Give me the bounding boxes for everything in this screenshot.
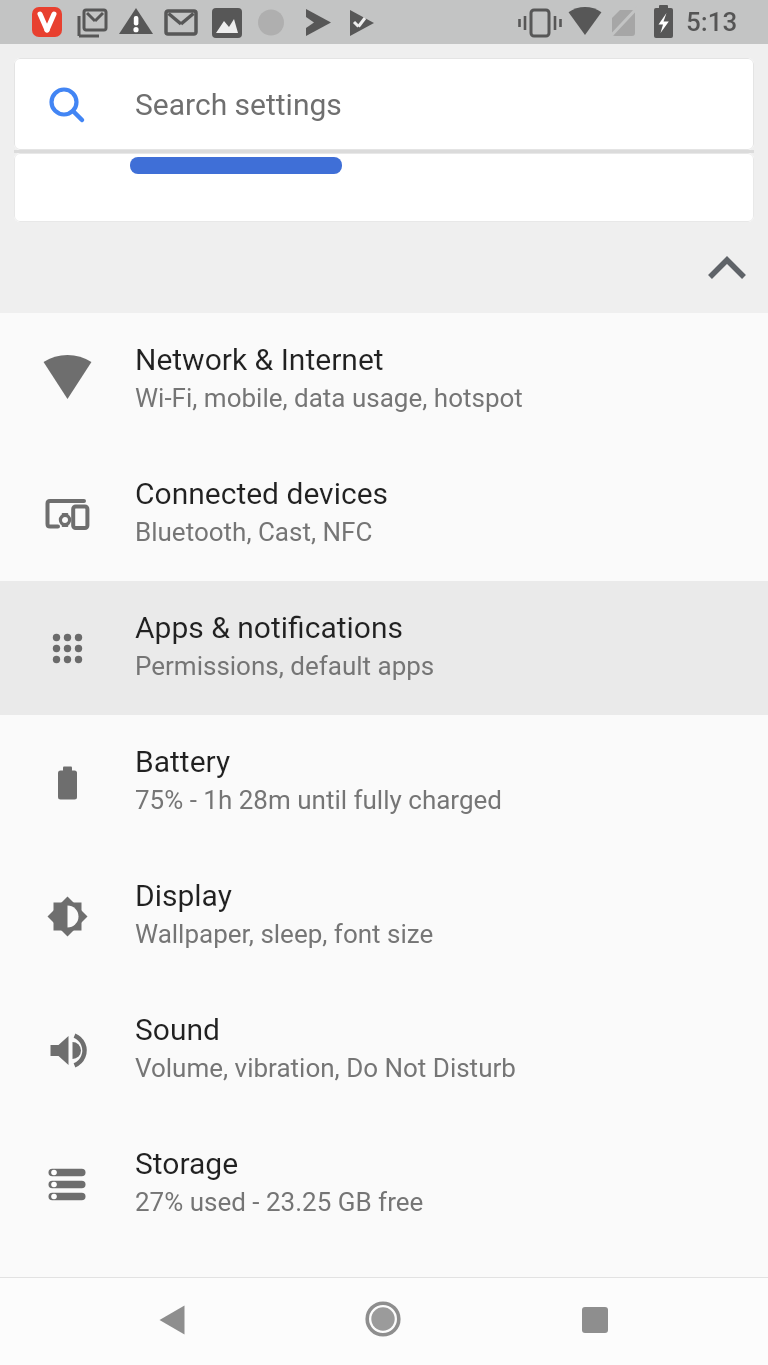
button[interactable]: Apps & notifications bbox=[0, 581, 768, 715]
button[interactable] bbox=[696, 237, 758, 299]
staticText: Display bbox=[135, 878, 232, 913]
button[interactable]: Storage bbox=[0, 1117, 768, 1251]
staticText: Sound bbox=[135, 1012, 220, 1047]
staticText: Bluetooth, Cast, NFC bbox=[135, 517, 373, 547]
button[interactable]: Battery bbox=[0, 715, 768, 849]
staticText: Connected devices bbox=[135, 476, 389, 511]
button[interactable]: Network & Internet bbox=[0, 313, 768, 447]
staticText: 5:13 bbox=[686, 7, 738, 37]
staticText: Network & Internet bbox=[135, 342, 384, 377]
staticText: Storage bbox=[135, 1146, 239, 1181]
staticText: Permissions, default apps bbox=[135, 651, 435, 681]
staticText: Wallpaper, sleep, font size bbox=[135, 919, 434, 949]
button[interactable]: Display bbox=[0, 849, 768, 983]
staticText: Search settings bbox=[135, 87, 342, 122]
button[interactable] bbox=[355, 1292, 411, 1348]
staticText: Battery bbox=[135, 744, 231, 779]
staticText: Apps & notifications bbox=[135, 610, 403, 645]
staticText: 75% - 1h 28m until fully charged bbox=[135, 785, 502, 815]
button[interactable]: Connected devices bbox=[0, 447, 768, 581]
staticText: 27% used - 23.25 GB free bbox=[135, 1187, 424, 1217]
button[interactable]: Search settings bbox=[14, 58, 754, 150]
staticText: Volume, vibration, Do Not Disturb bbox=[135, 1053, 516, 1083]
button[interactable] bbox=[14, 153, 754, 222]
staticText: Wi-Fi, mobile, data usage, hotspot bbox=[135, 383, 523, 413]
button[interactable] bbox=[567, 1292, 623, 1348]
button[interactable] bbox=[144, 1292, 200, 1348]
button[interactable]: Sound bbox=[0, 983, 768, 1117]
